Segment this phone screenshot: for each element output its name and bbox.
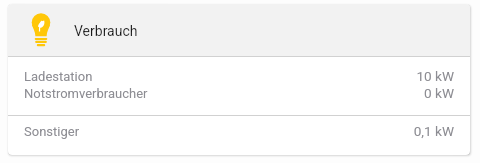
- button[interactable]: Sonstiger: [8, 123, 470, 140]
- staticText: Ladestation: [24, 69, 93, 84]
- staticText: Verbrauch: [74, 23, 138, 39]
- staticText: Sonstiger: [24, 124, 80, 139]
- staticText: Notstromverbraucher: [24, 86, 148, 101]
- button[interactable]: Ladestation: [8, 68, 470, 85]
- staticText: 10 kW: [416, 68, 454, 84]
- button[interactable]: Verbrauch: [8, 4, 470, 56]
- staticText: 0 kW: [424, 85, 454, 101]
- button[interactable]: Notstromverbraucher: [8, 85, 470, 102]
- staticText: 0,1 kW: [413, 123, 454, 139]
- other: Verbrauch: [24, 13, 58, 47]
